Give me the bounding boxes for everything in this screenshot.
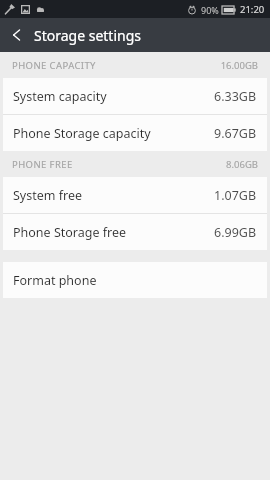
staticText: System free — [13, 187, 83, 204]
staticText: Storage settings — [34, 26, 142, 45]
staticText: 8.06GB — [226, 158, 258, 171]
staticText: 1.07GB — [214, 187, 257, 204]
staticText: 16.00GB — [220, 59, 258, 72]
staticText: 6.33GB — [214, 88, 257, 105]
staticText: System capacity — [13, 88, 107, 105]
button[interactable]: Back — [0, 18, 34, 52]
button[interactable]: Phone Storage free — [3, 214, 267, 250]
staticText: 21:20 — [240, 3, 265, 16]
staticText: PHONE CAPACITY — [12, 59, 96, 72]
button[interactable]: Format phone — [3, 262, 267, 298]
button[interactable]: Phone Storage capacity — [3, 115, 267, 151]
staticText: 90% — [201, 4, 219, 16]
button[interactable]: System free — [3, 177, 267, 213]
staticText: Format phone — [13, 272, 97, 289]
staticText: 6.99GB — [214, 224, 257, 241]
staticText: 9.67GB — [214, 125, 257, 142]
button[interactable]: System capacity — [3, 78, 267, 114]
staticText: PHONE FREE — [12, 158, 73, 171]
staticText: Phone Storage capacity — [13, 125, 151, 142]
staticText: Phone Storage free — [13, 224, 127, 241]
